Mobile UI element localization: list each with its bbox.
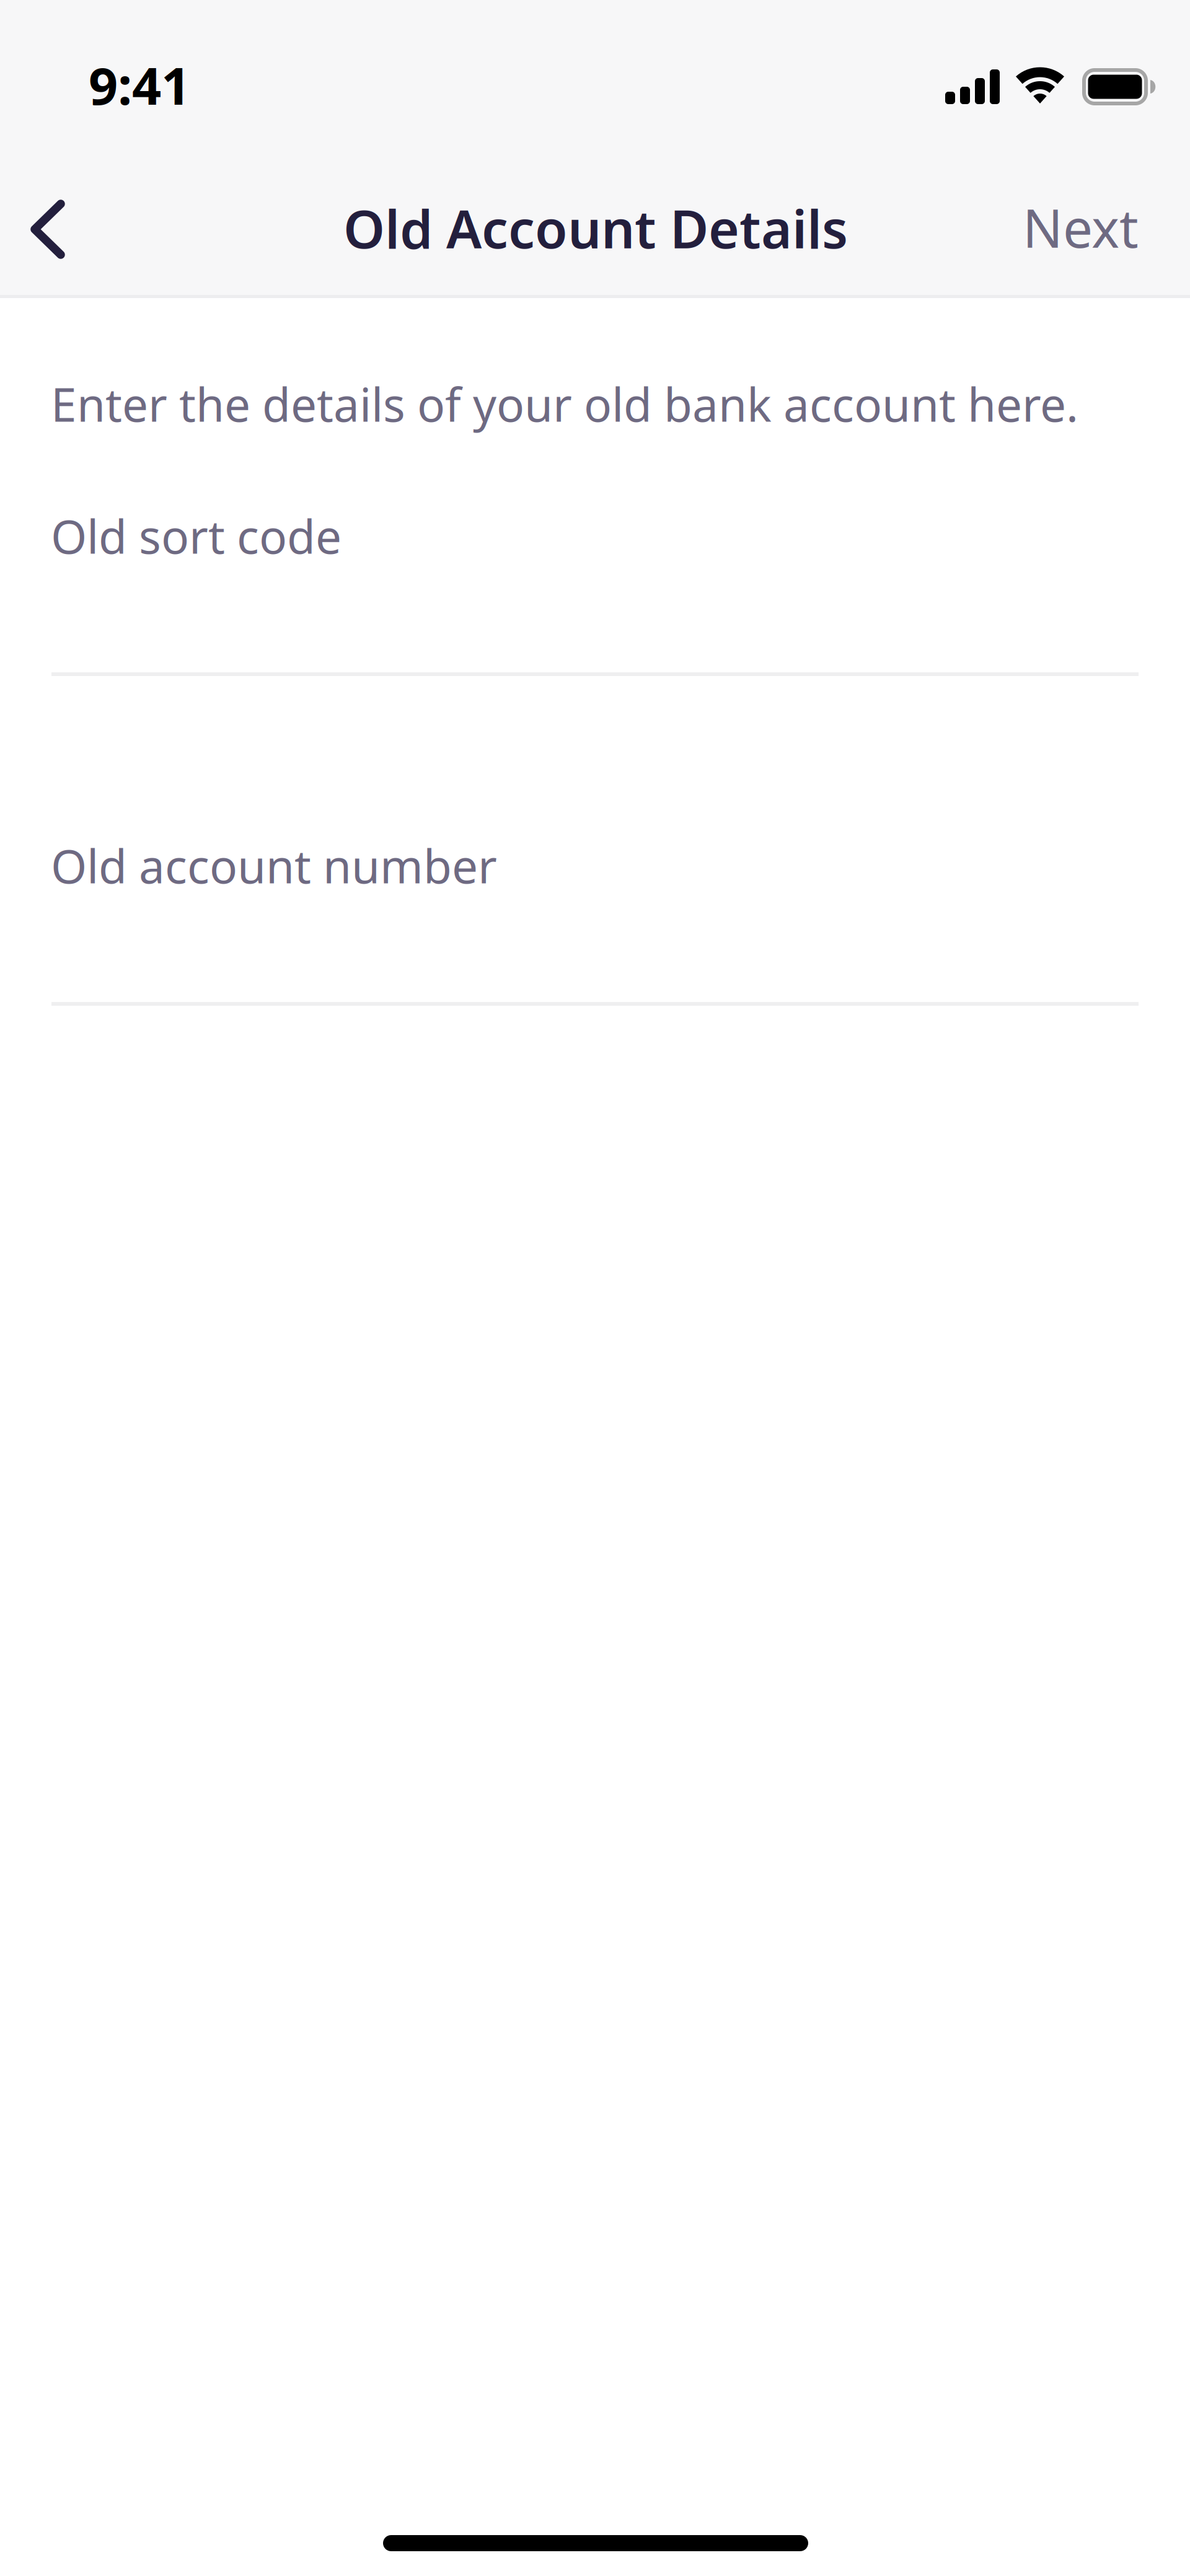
navigationBar: Old Account Details <box>0 0 1190 298</box>
staticText: Old sort code <box>51 505 342 567</box>
staticText: Next <box>1023 192 1139 262</box>
textField[interactable]: Old account number <box>51 835 1139 1006</box>
button[interactable]: Old account number <box>51 835 1139 1006</box>
button[interactable]: Back <box>0 183 97 276</box>
staticText: 9:41 <box>89 51 190 119</box>
textField[interactable]: Old sort code <box>51 505 1139 676</box>
button[interactable]: Old sort code <box>51 505 1139 676</box>
staticText: Enter the details of your old bank accou… <box>51 373 1078 435</box>
button[interactable]: Next <box>994 177 1190 278</box>
staticText: Old account number <box>51 835 497 896</box>
staticText: Old Account Details <box>343 193 848 263</box>
